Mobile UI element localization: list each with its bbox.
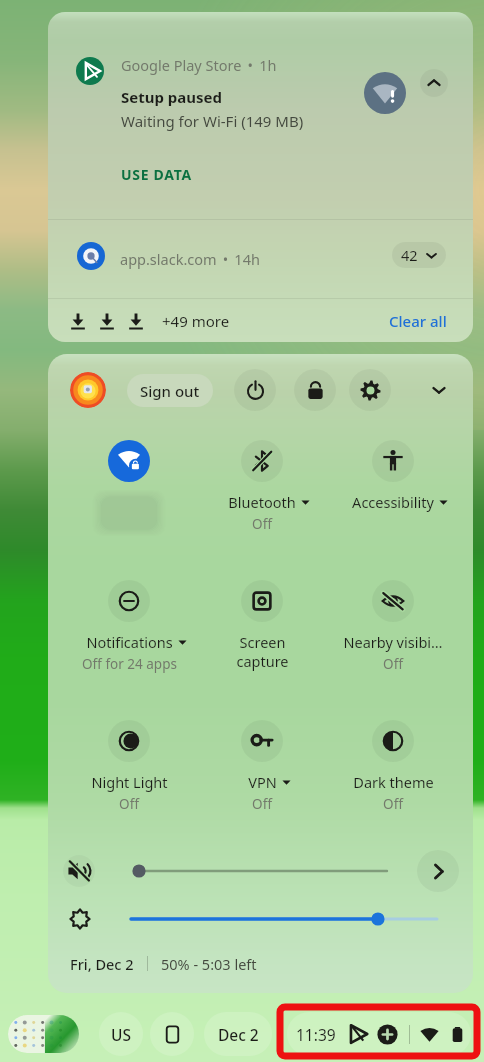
staticText: 11:39 — [296, 1024, 336, 1045]
button[interactable]: Settings — [349, 369, 391, 411]
button[interactable]: Sign out — [127, 374, 213, 407]
button[interactable]: Account — [70, 372, 106, 408]
staticText: VPN — [248, 772, 277, 792]
button[interactable]: Brightness — [64, 903, 96, 935]
other: Wi-Fi problem — [364, 72, 406, 114]
staticText: Off — [252, 515, 272, 533]
staticText: Night Light — [91, 772, 168, 792]
staticText: Off — [119, 795, 139, 813]
staticText: app.slack.com • 14h — [120, 249, 260, 269]
staticText: 50% - 5:03 left — [161, 954, 257, 974]
staticText: Off for 24 apps — [82, 655, 177, 673]
button[interactable]: US — [99, 1012, 143, 1056]
staticText: Nearby visibi… — [343, 632, 443, 652]
staticText: US — [111, 1024, 131, 1045]
staticText: Bluetooth — [228, 492, 296, 512]
staticText: Off — [252, 795, 272, 813]
button[interactable] — [62, 440, 196, 538]
staticText: Fri, Dec 2 — [70, 954, 134, 974]
button[interactable]: Collapse — [420, 69, 448, 97]
button[interactable]: Launcher — [8, 1015, 79, 1053]
button[interactable]: Bluetooth — [195, 440, 329, 533]
button[interactable]: Dark theme — [326, 720, 460, 813]
button[interactable]: +49 more — [162, 311, 230, 331]
button[interactable]: Volume — [63, 855, 95, 887]
button[interactable]: Collapse — [420, 371, 458, 409]
button[interactable]: Phone hub — [150, 1012, 194, 1056]
button[interactable]: Clear all — [389, 311, 447, 331]
staticText: 42 — [401, 245, 418, 265]
button[interactable]: Expand volume — [417, 850, 459, 892]
button[interactable]: Nearby visibi… — [326, 580, 460, 673]
button[interactable]: VPN — [195, 720, 329, 813]
button[interactable]: Status tray — [287, 1012, 471, 1056]
staticText: Dec 2 — [218, 1024, 259, 1045]
staticText: Off — [383, 655, 403, 673]
button[interactable]: app.slack.com • 14h — [48, 220, 473, 298]
staticText: Setup paused — [121, 87, 223, 107]
staticText: Screen capture — [236, 632, 289, 671]
button[interactable]: Google Play Store • 1h — [48, 12, 473, 219]
staticText: Dark theme — [353, 772, 434, 792]
staticText: Waiting for Wi-Fi (149 MB) — [121, 111, 304, 131]
button[interactable]: Power — [234, 369, 276, 411]
button[interactable]: Lock — [294, 369, 336, 411]
button[interactable]: USE DATA — [121, 165, 192, 184]
button[interactable]: 42 — [392, 242, 446, 268]
button[interactable]: Notifications — [62, 580, 196, 673]
staticText: Accessibility — [352, 492, 434, 512]
button[interactable]: Night Light — [62, 720, 196, 813]
staticText: Notifications — [86, 632, 173, 652]
staticText: Sign out — [140, 381, 200, 401]
button[interactable]: Accessibility — [326, 440, 460, 512]
staticText: Google Play Store • 1h — [121, 55, 277, 75]
button[interactable]: Dec 2 — [204, 1012, 272, 1056]
button[interactable]: Screen capture — [195, 580, 329, 671]
staticText: Off — [383, 795, 403, 813]
